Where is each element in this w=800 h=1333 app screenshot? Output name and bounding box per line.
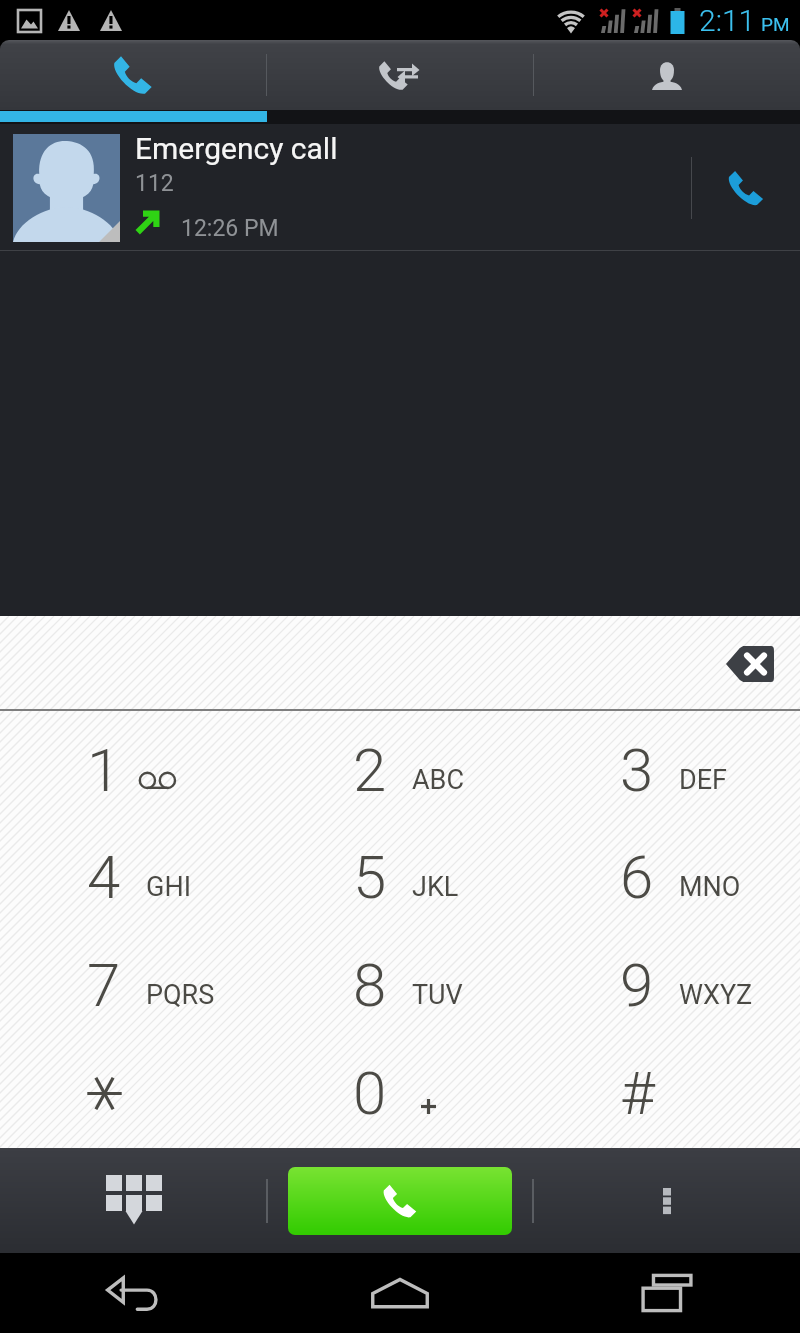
button[interactable]: Dialer tab (0, 40, 266, 110)
button[interactable]: 4 (0, 823, 266, 931)
button[interactable]: 9 (533, 931, 800, 1039)
staticText: Emergency call (135, 131, 338, 166)
staticText: WXYZ (679, 979, 753, 1011)
staticText: MNO (679, 871, 741, 903)
button[interactable]: Recents (533, 1253, 800, 1333)
staticText: TUV (412, 979, 463, 1011)
button[interactable]: Back (0, 1253, 266, 1333)
staticText: JKL (412, 871, 459, 903)
staticText: PM (761, 13, 790, 35)
staticText: 8 (353, 950, 387, 1020)
staticText: 7 (87, 950, 121, 1020)
staticText: 12:26 PM (181, 215, 279, 242)
button[interactable]: # (533, 1039, 800, 1147)
staticText: 2 (353, 735, 387, 805)
button[interactable]: Call log tab (267, 40, 533, 110)
button[interactable]: 6 (533, 823, 800, 931)
staticText: 0 (353, 1058, 387, 1128)
button[interactable]: 0 (266, 1039, 533, 1147)
staticText: 1 (87, 735, 121, 805)
button[interactable] (0, 1039, 266, 1147)
button[interactable]: Call 112 (692, 124, 800, 251)
staticText: DEF (679, 764, 727, 796)
button[interactable]: Call (288, 1167, 512, 1235)
button[interactable]: Hide dialpad (0, 1148, 266, 1253)
staticText: 4 (87, 842, 121, 912)
button[interactable]: Contacts tab (534, 40, 800, 110)
staticText: 2:11 (699, 3, 756, 38)
staticText: 6 (620, 842, 654, 912)
button[interactable]: Emergency call (0, 124, 691, 251)
button[interactable]: 5 (266, 823, 533, 931)
button[interactable]: Home (266, 1253, 533, 1333)
staticText: 9 (620, 950, 654, 1020)
button[interactable]: Delete (712, 631, 788, 697)
staticText: PQRS (146, 979, 215, 1011)
staticText: 112 (135, 170, 174, 197)
button[interactable]: More options (534, 1148, 800, 1253)
button[interactable]: 3 (533, 716, 800, 823)
button[interactable]: 1 (0, 716, 266, 823)
button[interactable]: 7 (0, 931, 266, 1039)
staticText: GHI (146, 871, 191, 903)
button[interactable]: 8 (266, 931, 533, 1039)
staticText: 3 (620, 735, 654, 805)
staticText: ABC (412, 764, 465, 796)
staticText: # (620, 1058, 655, 1128)
button[interactable]: 2 (266, 716, 533, 823)
staticText: 5 (353, 842, 387, 912)
